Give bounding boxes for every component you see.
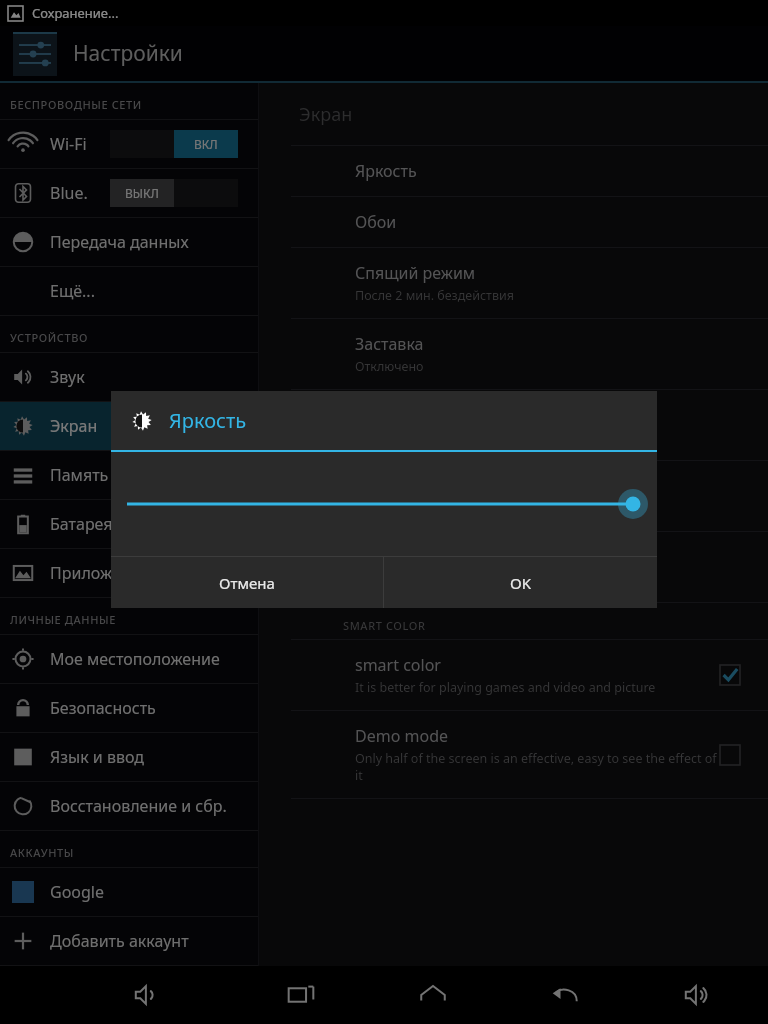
button[interactable]: Обои <box>259 197 768 247</box>
button[interactable]: Добавить аккаунт <box>0 917 258 965</box>
staticText: Отключено <box>355 358 424 375</box>
button[interactable]: Заставка <box>259 319 768 389</box>
button[interactable]: Приложения <box>0 549 258 597</box>
staticText: Мое местоположение <box>50 648 220 670</box>
staticText: Беспроводной проектор <box>355 546 545 568</box>
staticText: Only half of the screen is an effective,… <box>355 750 720 784</box>
button[interactable]: Батарея <box>0 500 258 548</box>
staticText: Wi-Fi <box>50 133 87 155</box>
staticText: Язык и ввод <box>50 746 145 768</box>
staticText: ВКЛ <box>194 136 218 152</box>
button[interactable]: Demo mode <box>259 711 768 798</box>
button[interactable]: Checked <box>720 665 740 685</box>
button[interactable]: Безопасность <box>0 684 258 732</box>
button[interactable]: Память <box>0 451 258 499</box>
button[interactable]: Экран <box>0 402 258 450</box>
button[interactable]: Яркость <box>259 146 768 196</box>
button[interactable]: smart color <box>259 640 768 710</box>
button[interactable]: Unchecked <box>720 745 740 765</box>
button[interactable]: Ещё... <box>0 267 258 315</box>
staticText: БЕСПРОВОДНЫЕ СЕТИ <box>10 97 142 112</box>
staticText: Blue. <box>50 182 88 204</box>
staticText: Выключено <box>355 500 426 517</box>
staticText: Яркость <box>355 160 417 182</box>
button[interactable]: Восстановление и сбр. <box>0 782 258 830</box>
staticText: Звук <box>50 366 85 388</box>
staticText: Безопасность <box>50 697 156 719</box>
staticText: Яркость <box>169 407 247 434</box>
button[interactable]: Звук <box>0 353 258 401</box>
button[interactable]: Мое местоположение <box>0 635 258 683</box>
button[interactable]: Back <box>538 968 592 1022</box>
staticText: Экран <box>50 415 98 437</box>
staticText: Отмена <box>219 573 275 593</box>
button[interactable]: Home <box>406 968 460 1022</box>
button[interactable]: Трансляция экрана <box>259 461 768 531</box>
staticText: Добавить аккаунт <box>50 930 189 952</box>
staticText: Настройки <box>73 39 183 68</box>
staticText: ВЫКЛ <box>125 185 159 201</box>
staticText: Demo mode <box>355 725 449 747</box>
button[interactable]: Отмена <box>111 557 383 608</box>
staticText: It is better for playing games and video… <box>355 679 656 696</box>
button[interactable]: Размер шрифта <box>259 390 768 460</box>
staticText: ЛИЧНЫЕ ДАННЫЕ <box>10 612 116 627</box>
staticText: После 2 мин. бездействия <box>355 287 514 304</box>
staticText: Спящий режим <box>355 262 476 284</box>
staticText: Передача данных <box>50 231 189 253</box>
staticText: Обои <box>355 211 397 233</box>
button[interactable]: Blue. <box>0 169 258 217</box>
staticText: Google <box>50 881 105 903</box>
staticText: Ещё... <box>50 280 95 302</box>
staticText: Приложения <box>50 562 150 584</box>
button[interactable]: Wi-Fi <box>0 120 258 168</box>
button[interactable]: Volume down <box>120 968 174 1022</box>
button[interactable]: OK <box>384 557 657 608</box>
button[interactable]: Спящий режим <box>259 248 768 318</box>
staticText: Экран <box>299 102 353 127</box>
staticText: УСТРОЙСТВО <box>10 330 89 345</box>
staticText: smart color <box>355 654 441 676</box>
staticText: Сохранение... <box>32 4 119 22</box>
staticText: Память <box>50 464 109 486</box>
staticText: Восстановление и сбр. <box>50 795 227 817</box>
button[interactable]: Беспроводной проектор <box>259 532 768 602</box>
staticText: SMART COLOR <box>343 618 426 633</box>
staticText: Батарея <box>50 513 113 535</box>
staticText: Заставка <box>355 333 424 355</box>
button[interactable]: Передача данных <box>0 218 258 266</box>
staticText: АККАУНТЫ <box>10 845 74 860</box>
button[interactable]: Google <box>0 868 258 916</box>
staticText: OK <box>510 573 532 593</box>
button[interactable]: Язык и ввод <box>0 733 258 781</box>
button[interactable]: Recent apps <box>274 968 328 1022</box>
button[interactable]: Volume up <box>670 968 724 1022</box>
